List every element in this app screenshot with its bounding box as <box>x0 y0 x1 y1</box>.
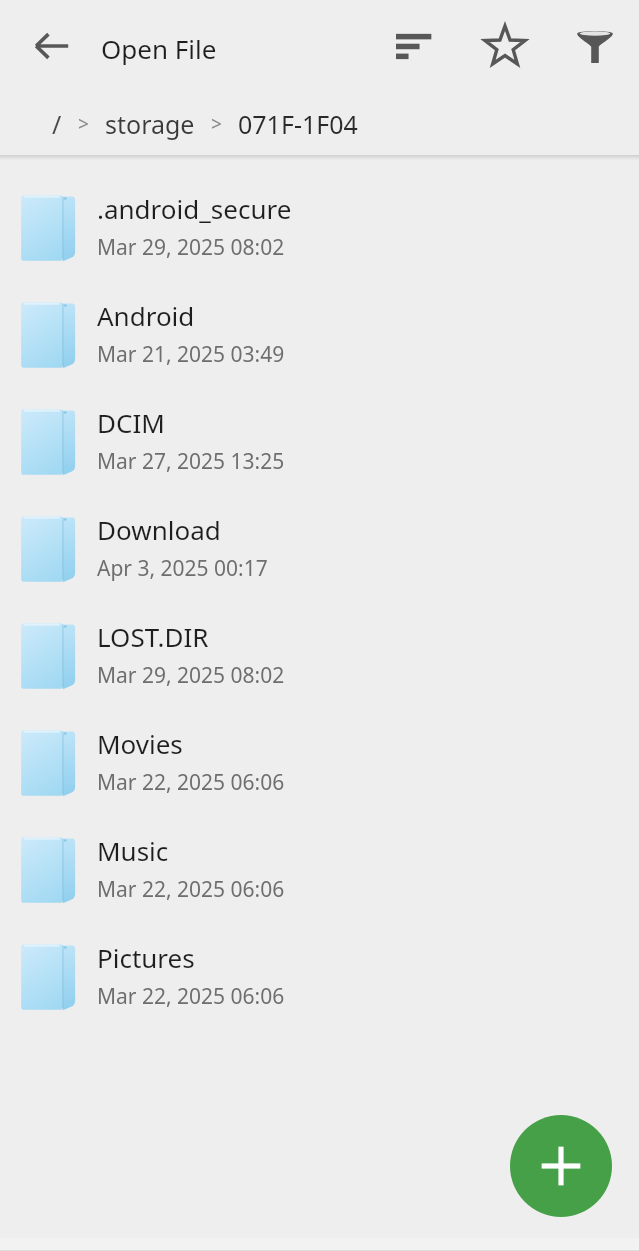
staticText: Movies <box>97 726 183 761</box>
staticText: Music <box>97 833 169 868</box>
staticText: > <box>211 111 222 137</box>
staticText: Mar 29, 2025 08:02 <box>97 661 285 690</box>
button[interactable]: Download <box>0 494 639 601</box>
button[interactable]: Android <box>0 280 639 387</box>
button[interactable]: Pictures <box>0 922 639 1029</box>
button[interactable]: Favorites <box>471 12 539 80</box>
staticText: Pictures <box>97 940 195 975</box>
button[interactable]: Add <box>510 1115 612 1217</box>
button[interactable]: DCIM <box>0 387 639 494</box>
staticText: Mar 21, 2025 03:49 <box>97 340 285 369</box>
staticText: Apr 3, 2025 00:17 <box>97 554 268 583</box>
staticText: storage <box>105 107 195 141</box>
button[interactable]: storage <box>105 107 195 141</box>
staticText: DCIM <box>97 405 165 440</box>
staticText: LOST.DIR <box>97 619 209 654</box>
staticText: Mar 29, 2025 08:02 <box>97 233 285 262</box>
staticText: .android_secure <box>97 191 292 226</box>
button[interactable]: Sort <box>381 12 449 80</box>
staticText: Mar 22, 2025 06:06 <box>97 875 285 904</box>
button[interactable]: Music <box>0 815 639 922</box>
button[interactable]: Filter <box>561 12 629 80</box>
staticText: Mar 22, 2025 06:06 <box>97 768 285 797</box>
staticText: 071F-1F04 <box>238 107 358 141</box>
button[interactable]: Movies <box>0 708 639 815</box>
staticText: Mar 27, 2025 13:25 <box>97 447 285 476</box>
button[interactable]: LOST.DIR <box>0 601 639 708</box>
staticText: Download <box>97 512 221 547</box>
button[interactable]: 071F-1F04 <box>238 107 358 141</box>
button[interactable]: / <box>52 107 62 141</box>
staticText: Android <box>97 298 195 333</box>
staticText: / <box>52 107 62 141</box>
button[interactable]: .android_secure <box>0 173 639 280</box>
staticText: Open File <box>101 31 217 66</box>
button[interactable]: Back <box>18 12 86 80</box>
staticText: Mar 22, 2025 06:06 <box>97 982 285 1011</box>
staticText: > <box>78 111 89 137</box>
